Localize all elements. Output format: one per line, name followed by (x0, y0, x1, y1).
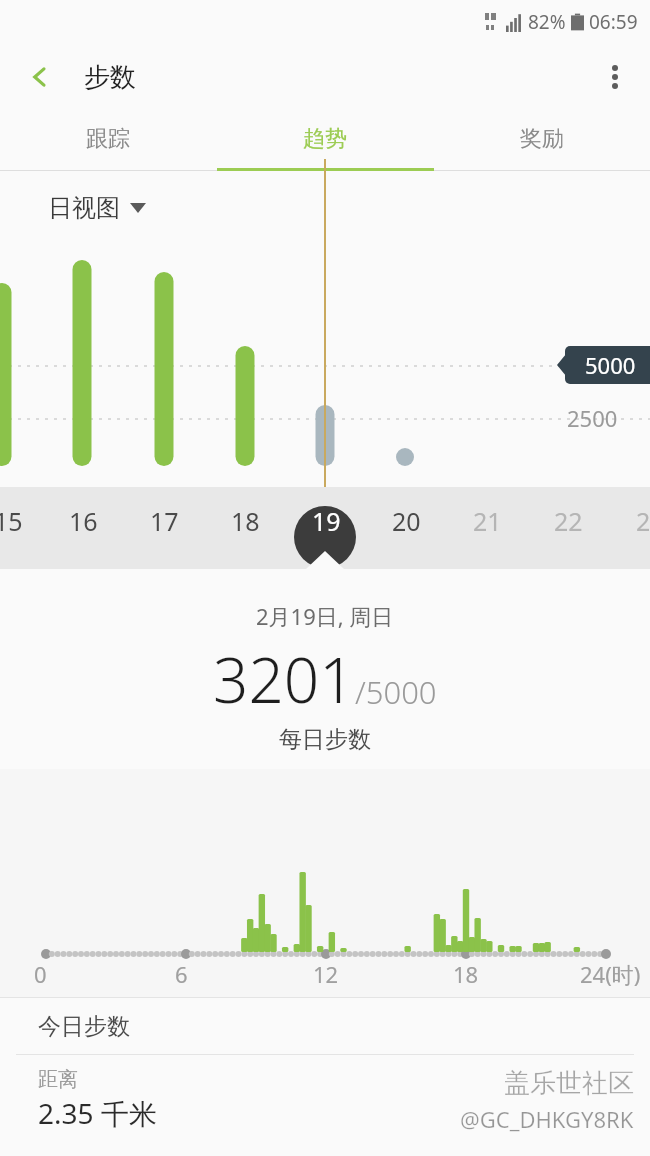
staticText: 2月19日, 周日 (256, 601, 394, 631)
staticText: 23 (636, 504, 650, 538)
staticText: @GC_DHKGY8RK (460, 1104, 634, 1134)
staticText: 每日步数 (279, 725, 371, 754)
staticText: 21 (473, 504, 502, 538)
button[interactable]: 23 (634, 487, 650, 555)
button[interactable]: More options (588, 50, 642, 104)
staticText: 17 (150, 504, 179, 538)
staticText: 22 (554, 504, 583, 538)
staticText: 趋势 (303, 125, 347, 153)
staticText: 日视图 (48, 193, 120, 223)
staticText: 12 (313, 959, 339, 989)
staticText: 19 (312, 504, 341, 538)
staticText: 2.35 千米 (38, 1094, 157, 1132)
staticText: 3201 (213, 637, 355, 721)
staticText: 奖励 (520, 125, 564, 153)
staticText: 步数 (84, 61, 136, 94)
staticText: 16 (69, 504, 98, 538)
staticText: 18 (453, 959, 479, 989)
button[interactable]: 16 (67, 487, 99, 555)
staticText: /5000 (355, 671, 437, 713)
staticText: 20 (392, 504, 421, 538)
button[interactable]: 20 (390, 487, 422, 555)
button[interactable]: 17 (148, 487, 180, 555)
staticText: 0 (34, 959, 47, 989)
staticText: 15 (0, 504, 23, 538)
staticText: 6 (175, 959, 188, 989)
button[interactable]: 22 (552, 487, 584, 555)
staticText: 5000 (585, 350, 636, 380)
staticText: 82% (528, 9, 566, 35)
staticText: 距离 (38, 1067, 78, 1092)
button[interactable]: 跟踪 (0, 110, 216, 168)
button[interactable]: 今日步数 (0, 998, 650, 1054)
button[interactable]: 21 (471, 487, 503, 555)
staticText: 06:59 (589, 9, 638, 35)
button[interactable]: Back (14, 51, 66, 103)
button[interactable]: 19 (310, 487, 342, 555)
button[interactable]: 日视图 (48, 193, 146, 223)
button[interactable]: 15 (0, 487, 24, 555)
button[interactable]: 距离 (0, 1055, 650, 1132)
staticText: 2500 (567, 403, 618, 433)
staticText: 盖乐世社区 (504, 1067, 634, 1100)
button[interactable]: 奖励 (433, 110, 650, 168)
staticText: 今日步数 (38, 1012, 130, 1041)
staticText: 18 (231, 504, 260, 538)
button[interactable]: 趋势 (216, 110, 433, 168)
staticText: 24(时) (580, 959, 641, 989)
staticText: 跟踪 (86, 125, 130, 153)
button[interactable]: 18 (229, 487, 261, 555)
